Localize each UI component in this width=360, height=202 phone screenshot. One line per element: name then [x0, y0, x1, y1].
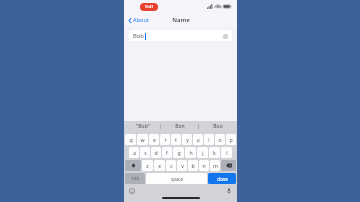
staticText: t: [175, 136, 177, 143]
button[interactable]: Clear text: [222, 33, 228, 39]
button[interactable]: b: [188, 160, 198, 171]
staticText: d: [154, 149, 158, 156]
staticText: q: [129, 136, 133, 143]
staticText: x: [158, 162, 161, 169]
button[interactable]: j: [197, 147, 208, 158]
button[interactable]: Dictation: [225, 187, 233, 195]
staticText: y: [186, 136, 189, 143]
staticText: g: [177, 149, 181, 156]
button[interactable]: c: [166, 160, 176, 171]
button[interactable]: g: [173, 147, 184, 158]
button[interactable]: i: [204, 134, 214, 145]
staticText: "Bob": [136, 123, 150, 130]
staticText: p: [229, 136, 233, 143]
button[interactable]: l: [221, 147, 232, 158]
button[interactable]: done: [208, 173, 236, 184]
button[interactable]: s: [140, 147, 150, 158]
button[interactable]: "Bob": [124, 121, 161, 132]
staticText: 9:41: [145, 4, 154, 10]
staticText: h: [189, 149, 193, 156]
button[interactable]: Bob: [129, 30, 232, 41]
button[interactable]: u: [193, 134, 203, 145]
staticText: 123: [131, 176, 139, 182]
staticText: About: [133, 16, 149, 24]
staticText: Boo: [213, 123, 223, 130]
button[interactable]: Emoji keyboard: [128, 187, 136, 195]
button[interactable]: d: [151, 147, 161, 158]
staticText: done: [217, 176, 228, 182]
staticText: Bob: [133, 32, 144, 40]
staticText: l: [226, 149, 228, 156]
button[interactable]: r: [160, 134, 170, 145]
button[interactable]: Backspace: [221, 160, 236, 171]
staticText: space: [171, 176, 183, 182]
button[interactable]: w: [137, 134, 148, 145]
staticText: r: [164, 136, 167, 143]
button[interactable]: t: [171, 134, 181, 145]
button[interactable]: About: [124, 14, 153, 26]
staticText: a: [133, 149, 136, 156]
button[interactable]: 123: [125, 173, 145, 184]
button[interactable]: x: [154, 160, 165, 171]
button[interactable]: z: [142, 160, 153, 171]
button[interactable]: q: [125, 134, 136, 145]
button[interactable]: f: [162, 147, 172, 158]
button[interactable]: v: [177, 160, 187, 171]
staticText: u: [196, 136, 200, 143]
staticText: c: [170, 162, 173, 169]
staticText: v: [181, 162, 184, 169]
button[interactable]: k: [209, 147, 220, 158]
button[interactable]: e: [149, 134, 159, 145]
button[interactable]: a: [129, 147, 139, 158]
button[interactable]: p: [226, 134, 236, 145]
staticText: i: [208, 136, 210, 143]
button[interactable]: m: [210, 160, 220, 171]
staticText: m: [213, 162, 218, 169]
staticText: Bon: [175, 123, 185, 130]
staticText: k: [213, 149, 216, 156]
button[interactable]: o: [215, 134, 225, 145]
staticText: o: [218, 136, 222, 143]
staticText: n: [202, 162, 206, 169]
staticText: s: [144, 149, 147, 156]
staticText: w: [140, 136, 145, 143]
button[interactable]: Bon: [161, 121, 199, 132]
staticText: f: [166, 149, 168, 156]
staticText: j: [202, 149, 204, 156]
button[interactable]: y: [182, 134, 192, 145]
button[interactable]: Shift: [125, 160, 141, 171]
staticText: z: [146, 162, 149, 169]
staticText: e: [153, 136, 156, 143]
staticText: b: [191, 162, 195, 169]
button[interactable]: Boo: [199, 121, 237, 132]
button[interactable]: h: [185, 147, 196, 158]
button[interactable]: space: [146, 173, 207, 184]
staticText: Name: [172, 16, 190, 24]
button[interactable]: n: [199, 160, 209, 171]
